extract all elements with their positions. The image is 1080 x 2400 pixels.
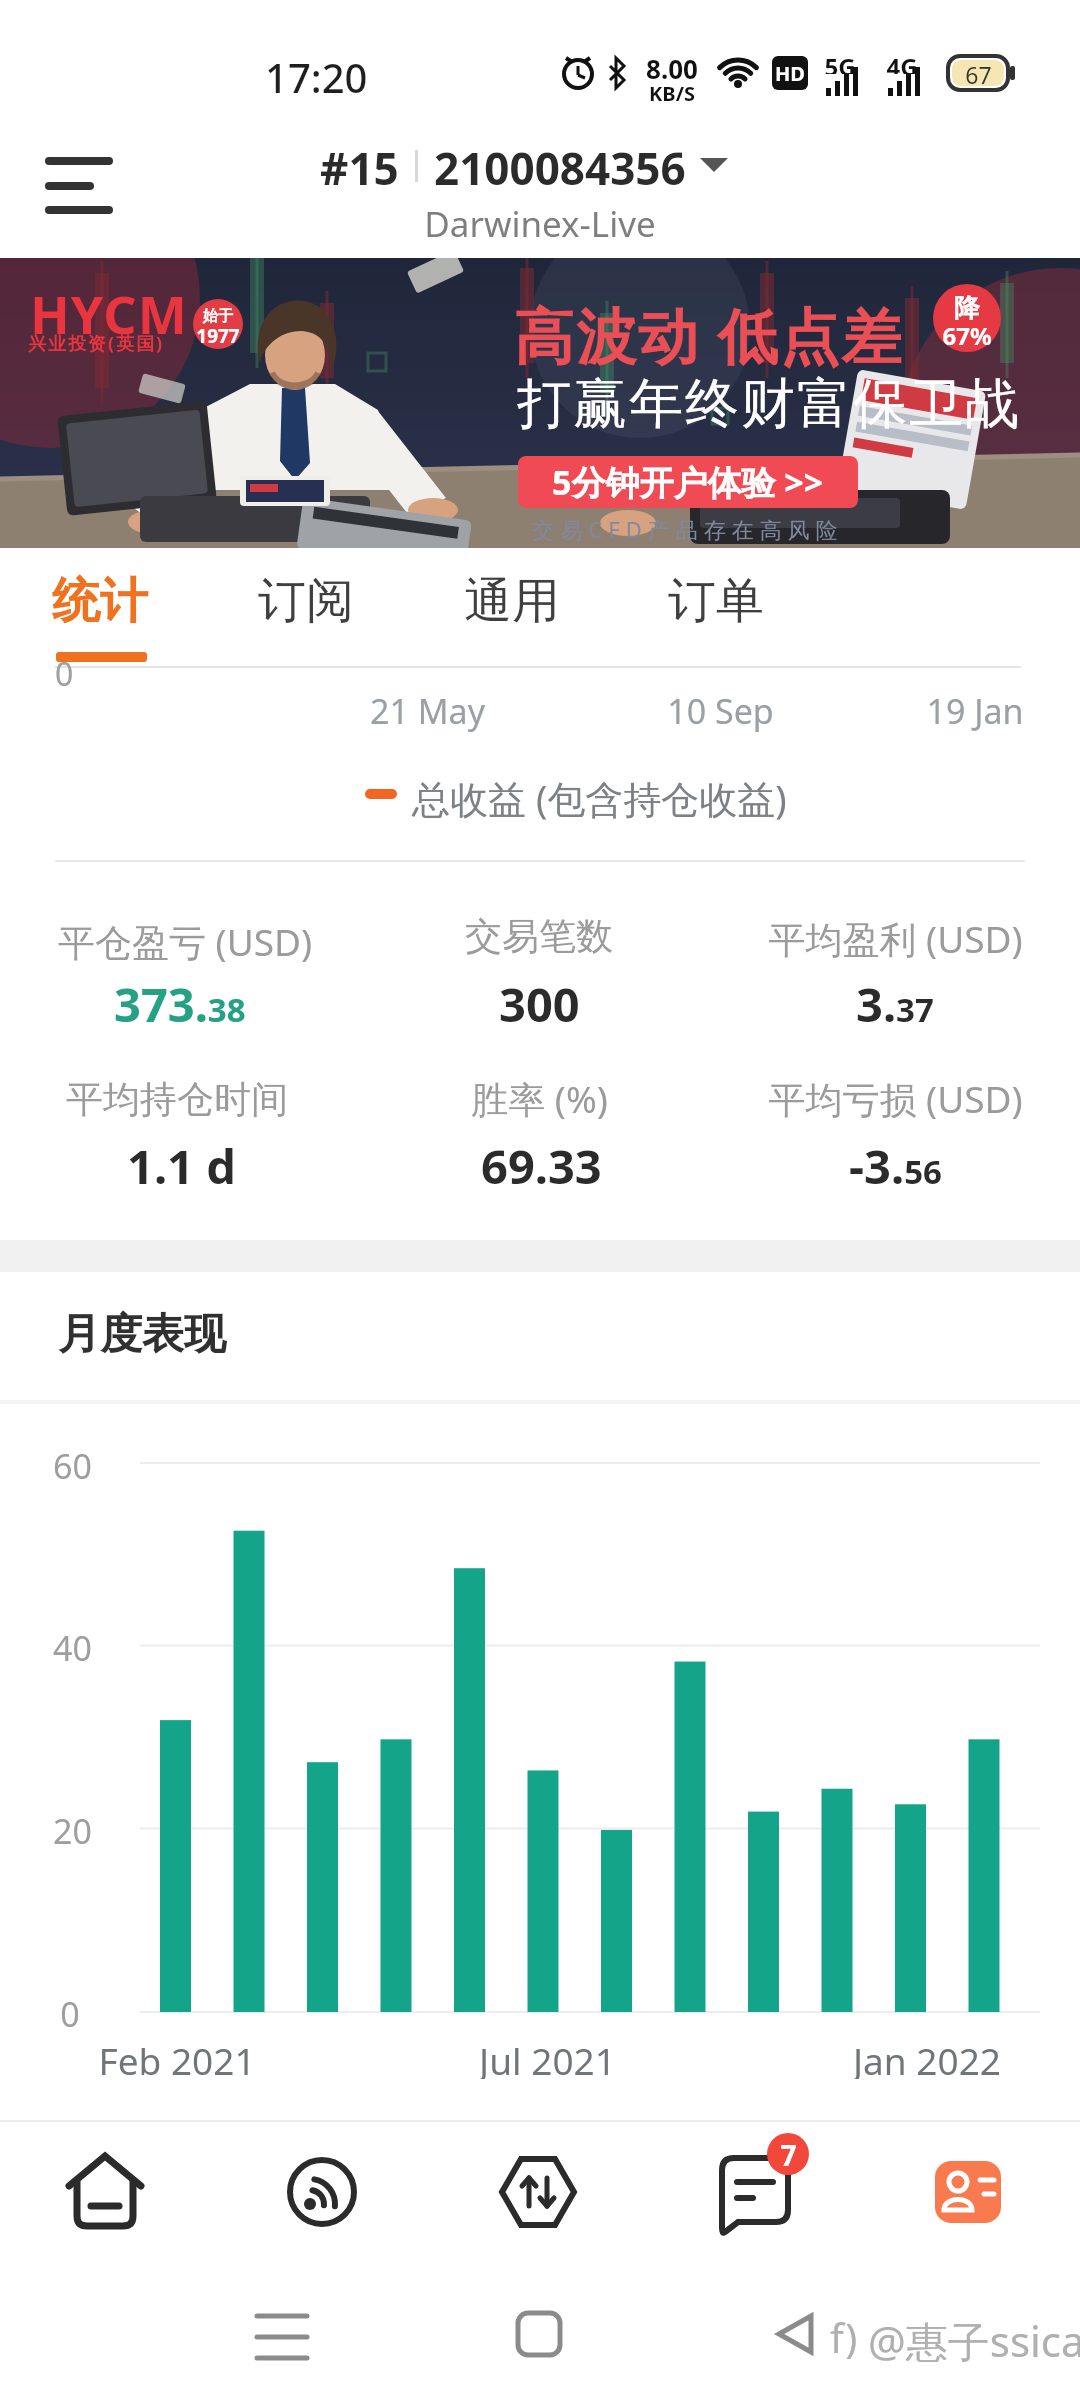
staticText: 订阅 bbox=[258, 571, 354, 631]
staticText: 67 bbox=[965, 59, 992, 87]
staticText: 17:20 bbox=[265, 50, 368, 104]
staticText: 2100084356 bbox=[434, 138, 686, 194]
staticText: 7 bbox=[780, 2136, 797, 2170]
staticText: Jul 2021 bbox=[479, 2035, 616, 2079]
staticText: 兴业投资(英国) bbox=[28, 331, 165, 356]
button[interactable] bbox=[490, 2300, 590, 2380]
button[interactable]: 订单 bbox=[636, 556, 796, 646]
staticText: 总收益 (包含持仓收益) bbox=[412, 772, 787, 824]
staticText: 20 bbox=[53, 1808, 92, 1848]
button[interactable] bbox=[665, 2128, 845, 2258]
staticText: 300 bbox=[499, 972, 580, 1036]
button[interactable] bbox=[15, 2128, 195, 2258]
staticText: 平仓盈亏 (USD) bbox=[58, 916, 313, 967]
staticText: 19 Jan bbox=[926, 688, 1024, 732]
button[interactable]: 通用 bbox=[432, 556, 592, 646]
staticText: 通用 bbox=[464, 571, 560, 631]
staticText: 21 May bbox=[370, 688, 485, 732]
staticText: 降 bbox=[954, 292, 980, 320]
staticText: Feb 2021 bbox=[98, 2035, 256, 2079]
staticText: #15 bbox=[320, 138, 399, 194]
staticText: 10 Sep bbox=[667, 688, 774, 732]
staticText: 1977 bbox=[196, 323, 240, 347]
button[interactable] bbox=[760, 2300, 850, 2380]
staticText: 平均亏损 (USD) bbox=[768, 1073, 1023, 1119]
staticText: KB/S bbox=[649, 80, 695, 104]
staticText: Darwinex-Live bbox=[424, 200, 656, 240]
button[interactable] bbox=[34, 140, 126, 232]
staticText: 平均持仓时间 bbox=[66, 1076, 288, 1123]
staticText: 40 bbox=[53, 1625, 92, 1665]
staticText: 始于 bbox=[203, 307, 233, 326]
staticText: 4G bbox=[886, 50, 918, 74]
button[interactable] bbox=[230, 2300, 340, 2380]
staticText: Jan 2022 bbox=[853, 2035, 1001, 2079]
staticText: 高波动 低点差 bbox=[514, 294, 904, 376]
button[interactable]: 5分钟开户体验 >> bbox=[518, 456, 858, 508]
staticText: 订单 bbox=[668, 571, 764, 631]
staticText: 平均盈利 (USD) bbox=[768, 913, 1023, 959]
staticText: 月度表现 bbox=[58, 1308, 226, 1361]
staticText: 0 bbox=[60, 1991, 80, 2031]
staticText: 胜率 (%) bbox=[471, 1073, 608, 1119]
staticText: HD bbox=[775, 60, 805, 87]
staticText: 373.38 bbox=[114, 972, 246, 1036]
button[interactable] bbox=[878, 2128, 1058, 2258]
button[interactable] bbox=[448, 2128, 628, 2258]
staticText: 5分钟开户体验 >> bbox=[552, 459, 824, 505]
staticText: 0 bbox=[55, 652, 74, 696]
button[interactable] bbox=[300, 135, 780, 240]
staticText: -3.56 bbox=[849, 1134, 942, 1198]
staticText: 1.1 d bbox=[127, 1134, 236, 1198]
button[interactable]: HYCM bbox=[0, 258, 1080, 548]
staticText: 统计 bbox=[52, 571, 148, 631]
staticText: 67% bbox=[942, 319, 992, 345]
staticText: f) bbox=[830, 2310, 858, 2364]
button[interactable] bbox=[232, 2128, 412, 2258]
button[interactable]: 订阅 bbox=[226, 556, 386, 646]
staticText: 67 bbox=[964, 57, 992, 87]
staticText: 69.33 bbox=[481, 1134, 602, 1198]
button[interactable]: 统计 bbox=[20, 556, 180, 646]
staticText: 60 bbox=[53, 1443, 92, 1483]
staticText: 打赢年终财富保卫战 bbox=[516, 370, 1020, 438]
staticText: HYCM bbox=[30, 278, 188, 349]
staticText: 3.37 bbox=[856, 972, 934, 1036]
staticText: 5G bbox=[824, 50, 856, 74]
staticText: 交易CFD产品存在高风险 bbox=[532, 514, 844, 542]
staticText: @惠子ssica bbox=[868, 2312, 1080, 2369]
staticText: 8.00 bbox=[646, 51, 698, 81]
staticText: 交易笔数 bbox=[465, 913, 613, 959]
